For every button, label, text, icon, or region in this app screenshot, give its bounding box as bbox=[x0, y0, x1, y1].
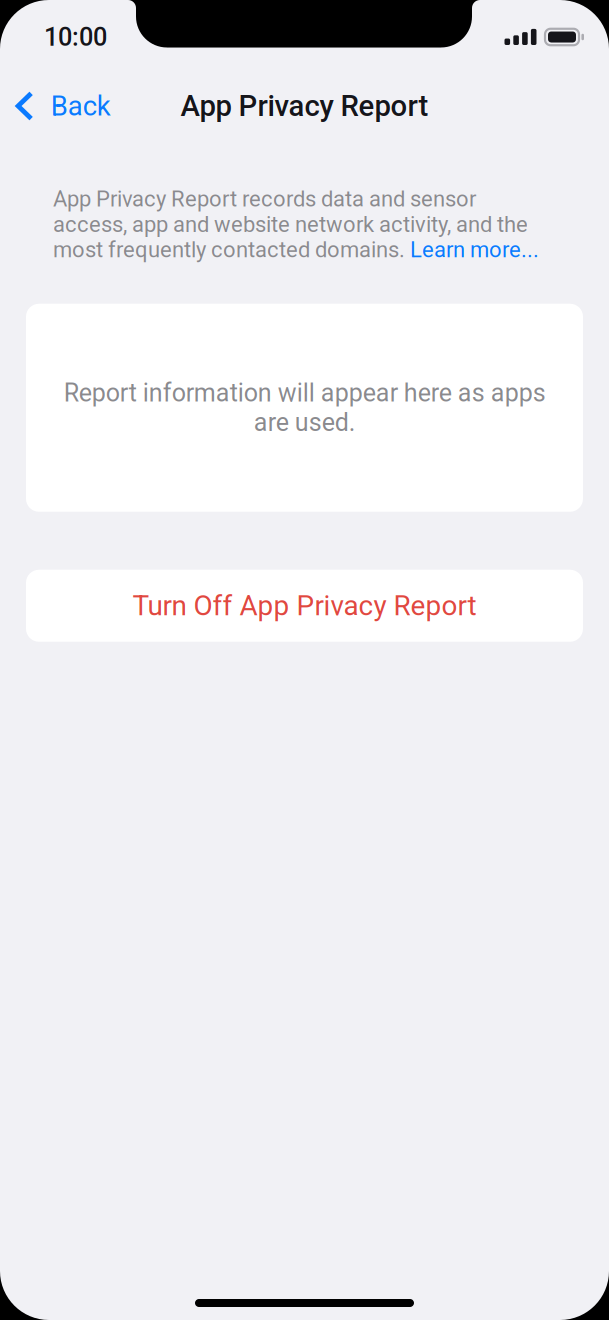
staticText: App Privacy Report bbox=[180, 89, 428, 123]
staticText: Back bbox=[51, 90, 111, 122]
button[interactable]: Learn more... bbox=[410, 237, 539, 263]
staticText: Turn Off App Privacy Report bbox=[132, 589, 476, 622]
button[interactable]: Turn Off App Privacy Report bbox=[0, 570, 609, 642]
staticText: App Privacy Report records data and sens… bbox=[53, 186, 476, 212]
button[interactable]: Back bbox=[0, 78, 125, 134]
staticText: Learn more... bbox=[410, 237, 539, 263]
staticText: 10:00 bbox=[44, 22, 107, 52]
staticText: Report information will appear here as a… bbox=[63, 378, 545, 437]
staticText: most frequently contacted domains. bbox=[53, 237, 410, 263]
staticText: access, app and website network activity… bbox=[53, 211, 528, 237]
